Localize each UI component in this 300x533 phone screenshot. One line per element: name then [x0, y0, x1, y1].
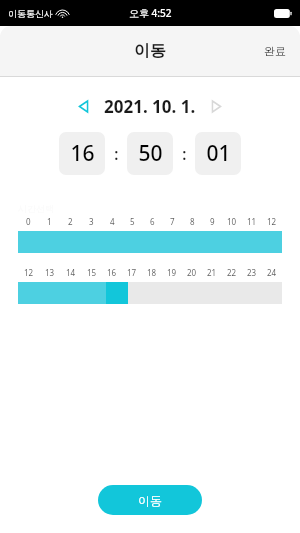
staticText: 1: [47, 216, 52, 227]
staticText: 21: [207, 267, 217, 278]
staticText: 오후 4:52: [129, 6, 172, 20]
staticText: 18: [147, 267, 157, 278]
staticText: 7: [170, 216, 175, 227]
staticText: 14: [66, 267, 76, 278]
staticText: 6: [150, 216, 155, 227]
staticText: 5: [130, 216, 135, 227]
staticText: 2021. 10. 1.: [104, 95, 196, 118]
staticText: 13: [45, 267, 55, 278]
staticText: 50: [138, 139, 163, 168]
staticText: 이동: [138, 493, 162, 508]
staticText: 이동통신사: [8, 8, 53, 19]
staticText: 4: [110, 216, 115, 227]
staticText: 01: [206, 139, 231, 168]
staticText: 12: [267, 216, 277, 227]
staticText: 3: [89, 216, 94, 227]
staticText: 16: [70, 139, 95, 168]
staticText: 24: [267, 267, 277, 278]
staticText: 완료: [264, 44, 286, 58]
button[interactable]: 이동: [98, 485, 202, 515]
staticText: :: [114, 142, 119, 165]
button[interactable]: Previous day: [73, 95, 94, 118]
button[interactable]: Next day: [206, 95, 227, 118]
button[interactable]: 01: [195, 132, 241, 175]
staticText: 이동: [134, 41, 166, 61]
button[interactable]: [18, 282, 282, 304]
staticText: 11: [247, 216, 257, 227]
button[interactable]: 완료: [250, 34, 300, 68]
button[interactable]: 16: [59, 132, 105, 175]
staticText: 10: [227, 216, 237, 227]
staticText: 16: [107, 267, 117, 278]
staticText: 9: [210, 216, 215, 227]
staticText: :: [182, 142, 187, 165]
staticText: 12: [24, 267, 34, 278]
staticText: 2: [68, 216, 73, 227]
staticText: 8: [190, 216, 195, 227]
staticText: 0: [26, 216, 31, 227]
staticText: 20: [187, 267, 197, 278]
staticText: 19: [167, 267, 177, 278]
staticText: 17: [127, 267, 137, 278]
button[interactable]: 50: [127, 132, 173, 175]
staticText: 23: [247, 267, 257, 278]
staticText: 15: [87, 267, 97, 278]
staticText: 22: [227, 267, 237, 278]
